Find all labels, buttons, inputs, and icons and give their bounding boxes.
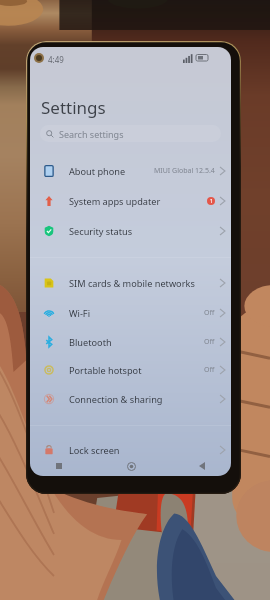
staticText: Lock screen — [69, 444, 120, 457]
button[interactable]: Security status — [30, 216, 231, 246]
staticText: MIUI Global 12.5.4 — [154, 166, 215, 176]
button[interactable]: Home — [122, 457, 140, 475]
staticText: Security status — [69, 225, 133, 238]
staticText: Settings — [41, 96, 106, 119]
staticText: Connection & sharing — [69, 393, 163, 406]
staticText: System apps updater — [69, 195, 161, 208]
button[interactable]: Recents — [50, 457, 68, 475]
button[interactable]: SIM cards & mobile networks — [30, 268, 231, 298]
staticText: Wi-Fi — [69, 307, 91, 320]
button[interactable]: Back — [193, 457, 211, 475]
staticText: Off — [204, 308, 215, 318]
staticText: SIM cards & mobile networks — [69, 277, 195, 290]
button[interactable]: Portable hotspot — [30, 355, 231, 385]
button[interactable]: Connection & sharing — [30, 384, 231, 414]
staticText: Off — [204, 337, 215, 347]
staticText: Search settings — [59, 128, 124, 140]
button[interactable]: About phone — [30, 156, 231, 186]
button[interactable]: System apps updater — [30, 186, 231, 216]
staticText: About phone — [69, 165, 126, 178]
button[interactable]: Bluetooth — [30, 327, 231, 357]
staticText: Off — [204, 365, 215, 375]
button[interactable]: Lock screen — [30, 435, 231, 465]
staticText: Bluetooth — [69, 336, 112, 349]
staticText: 4:49 — [48, 54, 64, 65]
button[interactable]: Wi-Fi — [30, 298, 231, 328]
staticText: Portable hotspot — [69, 364, 142, 377]
button[interactable]: Search settings — [40, 125, 221, 142]
staticText: 1 — [210, 198, 213, 205]
